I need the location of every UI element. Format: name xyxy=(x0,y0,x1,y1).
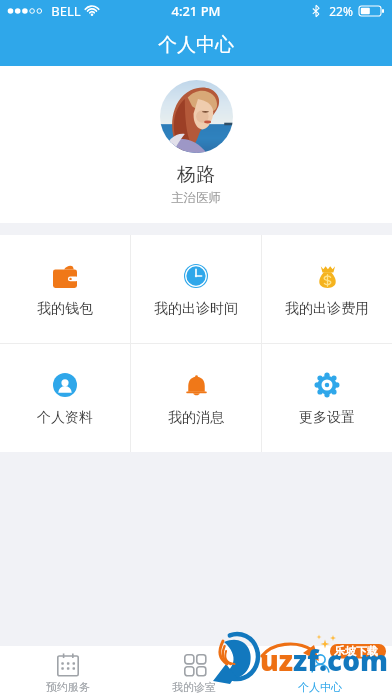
staticText: 22% xyxy=(329,3,353,19)
button[interactable]: 我的钱包 xyxy=(0,235,130,343)
staticText: 个人中心 xyxy=(298,680,342,694)
button[interactable]: 个人中心 xyxy=(257,646,383,696)
staticText: 杨路 xyxy=(177,163,215,187)
staticText: .com xyxy=(319,641,389,679)
staticText: 预约服务 xyxy=(46,680,90,694)
button[interactable] xyxy=(160,80,233,153)
staticText: BELL xyxy=(51,2,81,20)
button[interactable]: 更多设置 xyxy=(262,344,392,452)
staticText: 我的诊室 xyxy=(172,680,216,694)
button[interactable]: 个人资料 xyxy=(0,344,130,452)
staticText: 我的消息 xyxy=(168,409,224,427)
staticText: 我的钱包 xyxy=(37,300,93,318)
staticText: 我的出诊费用 xyxy=(285,300,369,318)
button[interactable]: 我的出诊费用 xyxy=(262,235,392,343)
staticText: 个人中心 xyxy=(158,33,234,57)
staticText: 个人资料 xyxy=(37,409,93,427)
button[interactable]: 我的出诊时间 xyxy=(131,235,261,343)
button[interactable]: 预约服务 xyxy=(4,646,131,696)
staticText: uz xyxy=(260,641,293,679)
staticText: 主治医师 xyxy=(171,190,221,206)
staticText: 更多设置 xyxy=(299,409,355,427)
staticText: zf xyxy=(293,641,319,679)
button[interactable]: 我的消息 xyxy=(131,344,261,452)
staticText: 4:21 PM xyxy=(171,2,221,20)
staticText: 乐坡下载 xyxy=(334,644,378,658)
staticText: 我的出诊时间 xyxy=(154,300,238,318)
button[interactable]: 我的诊室 xyxy=(131,646,257,696)
